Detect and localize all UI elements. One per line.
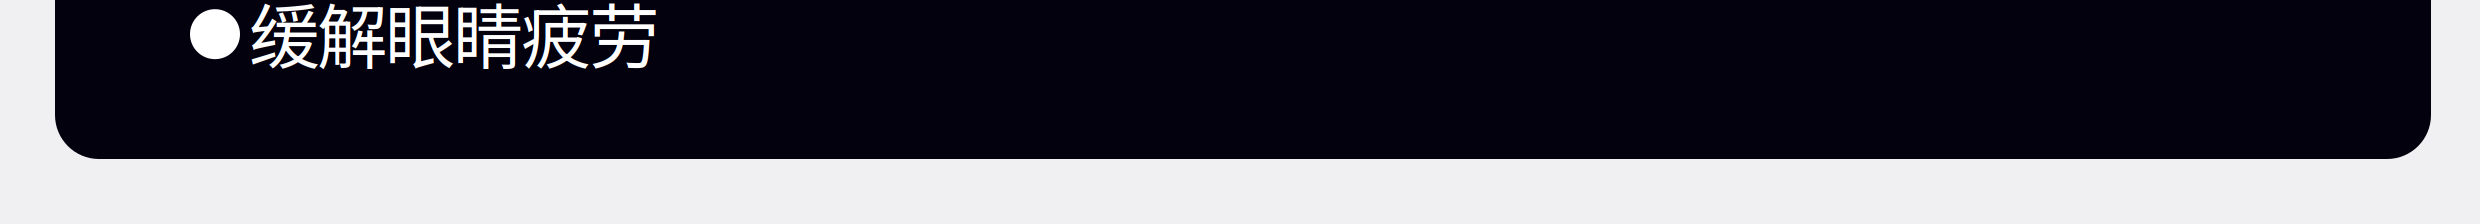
staticText: 缓解眼睛疲劳 xyxy=(249,0,660,83)
button[interactable]: 缓解眼睛疲劳 xyxy=(55,0,2431,159)
